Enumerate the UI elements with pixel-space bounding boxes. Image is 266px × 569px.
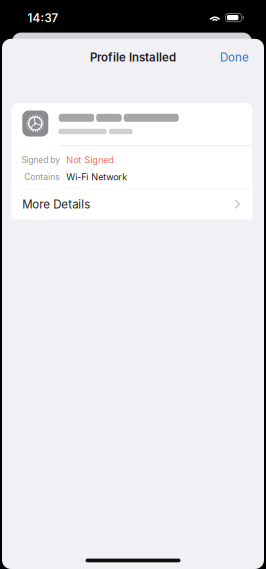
staticText: Profile Installed: [90, 50, 176, 64]
staticText: Contains: [24, 172, 60, 182]
button[interactable]: More Details: [11, 189, 252, 219]
staticText: Done: [220, 50, 249, 64]
staticText: Wi-Fi Network: [66, 172, 127, 182]
staticText: 14:37: [27, 11, 58, 25]
staticText: More Details: [22, 198, 90, 211]
staticText: Not Signed: [66, 155, 114, 165]
staticText: Signed by: [21, 155, 60, 165]
button[interactable]: Done: [208, 43, 261, 72]
